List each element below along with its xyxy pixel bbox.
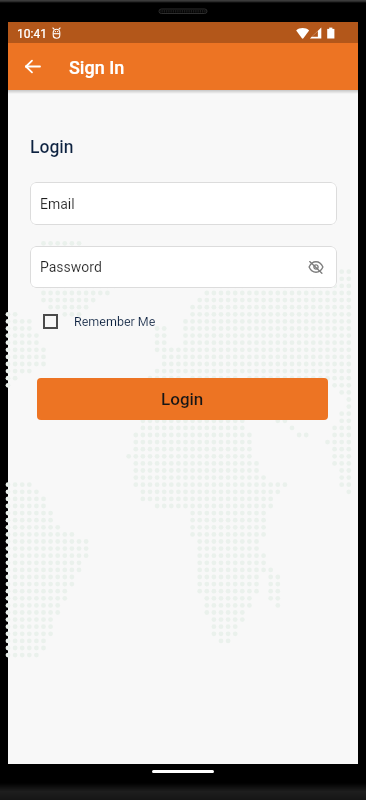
staticText: Login <box>30 137 74 158</box>
staticText: Sign In <box>69 57 125 78</box>
button[interactable]: Email <box>30 182 337 225</box>
staticText: 10:41 <box>17 27 47 41</box>
button[interactable]: Login <box>37 378 328 420</box>
staticText: Password <box>40 259 102 275</box>
button[interactable]: Show password <box>299 246 333 288</box>
staticText: Email <box>40 196 75 212</box>
button[interactable]: Navigate back <box>17 51 48 82</box>
button[interactable]: Password <box>30 246 337 288</box>
button[interactable]: Remember Me <box>43 307 156 335</box>
staticText: Remember Me <box>74 314 156 329</box>
staticText: Login <box>161 389 204 409</box>
